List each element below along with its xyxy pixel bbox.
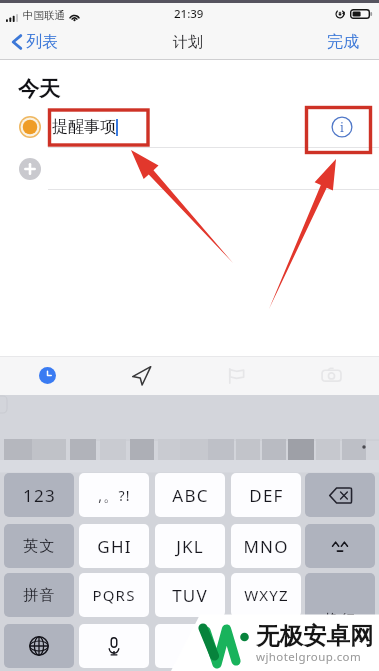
- staticText: 123: [23, 484, 56, 507]
- button[interactable]: Dictate: [79, 624, 149, 668]
- button[interactable]: GHI: [79, 524, 149, 568]
- staticText: 英文: [23, 537, 56, 556]
- button[interactable]: MNO: [231, 524, 301, 568]
- button[interactable]: Flagged: [189, 356, 284, 395]
- button[interactable]: DEF: [231, 473, 301, 517]
- staticText: 今天: [18, 76, 60, 102]
- button[interactable]: Switch keyboard: [4, 624, 74, 668]
- staticText: MNO: [243, 535, 289, 558]
- button[interactable]: 提醒事项: [0, 106, 379, 148]
- button[interactable]: ABC: [155, 473, 225, 517]
- staticText: i: [340, 119, 344, 135]
- button[interactable]: JKL: [155, 524, 225, 568]
- staticText: 中国联通: [23, 9, 65, 22]
- staticText: JKL: [176, 535, 204, 558]
- staticText: 无极安卓网: [256, 621, 374, 651]
- button[interactable]: ,。?!: [79, 473, 149, 517]
- staticText: 换行: [324, 611, 357, 630]
- staticText: 计划: [173, 33, 203, 52]
- button[interactable]: PQRS: [79, 573, 149, 617]
- button[interactable]: Scheduled: [94, 356, 189, 395]
- staticText: WXYZ: [244, 585, 289, 605]
- staticText: 列表: [26, 32, 58, 52]
- staticText: wjhotelgroup.com: [256, 649, 362, 665]
- button[interactable]: 123: [4, 473, 74, 517]
- button[interactable]: 英文: [4, 524, 74, 568]
- button[interactable]: Emoticons: [305, 524, 375, 568]
- staticText: ABC: [172, 484, 209, 507]
- button[interactable]: Today: [0, 356, 94, 395]
- staticText: DEF: [249, 484, 284, 507]
- button[interactable]: 拼音: [4, 573, 74, 617]
- staticText: PQRS: [92, 585, 136, 605]
- staticText: ,。?!: [98, 486, 131, 505]
- button[interactable]: Add reminder: [0, 148, 379, 190]
- button[interactable]: Camera: [284, 356, 379, 395]
- button[interactable]: 换行: [305, 573, 375, 668]
- button[interactable]: Delete: [305, 473, 375, 517]
- staticText: GHI: [97, 535, 132, 558]
- button[interactable]: [155, 624, 301, 668]
- staticText: 提醒事项: [52, 117, 116, 137]
- staticText: 拼音: [23, 586, 56, 605]
- button[interactable]: 完成: [314, 26, 379, 58]
- button[interactable]: 列表: [0, 27, 68, 57]
- button[interactable]: Details: [331, 116, 353, 138]
- staticText: 21:39: [174, 6, 204, 22]
- staticText: TUV: [172, 584, 208, 607]
- button[interactable]: WXYZ: [231, 573, 301, 617]
- button[interactable]: TUV: [155, 573, 225, 617]
- staticText: 完成: [327, 32, 359, 52]
